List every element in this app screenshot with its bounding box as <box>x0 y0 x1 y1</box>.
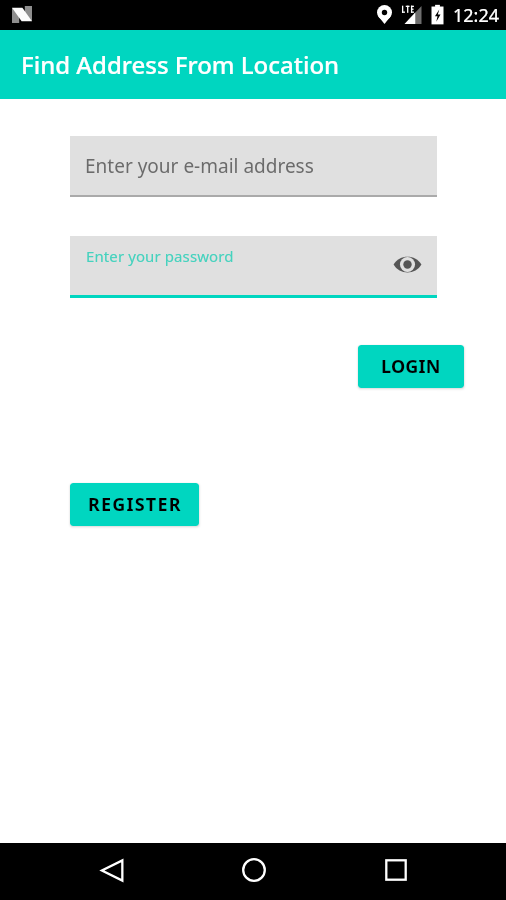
button[interactable]: Recent apps <box>374 848 418 892</box>
button[interactable]: Enter your e-mail address <box>70 136 437 197</box>
staticText: Enter your password <box>86 246 234 266</box>
staticText: Find Address From Location <box>21 48 340 81</box>
button[interactable]: Toggle password visibility <box>389 246 425 282</box>
button[interactable]: Enter your password <box>70 236 437 298</box>
button[interactable]: Back <box>90 848 134 892</box>
button[interactable]: Home <box>232 848 276 892</box>
staticText: Enter your e-mail address <box>85 153 314 179</box>
staticText: LOGIN <box>381 354 441 379</box>
staticText: 12:24 <box>453 3 500 28</box>
button[interactable]: LOGIN <box>358 345 464 388</box>
button[interactable]: REGISTER <box>70 483 199 526</box>
staticText: REGISTER <box>88 492 182 517</box>
